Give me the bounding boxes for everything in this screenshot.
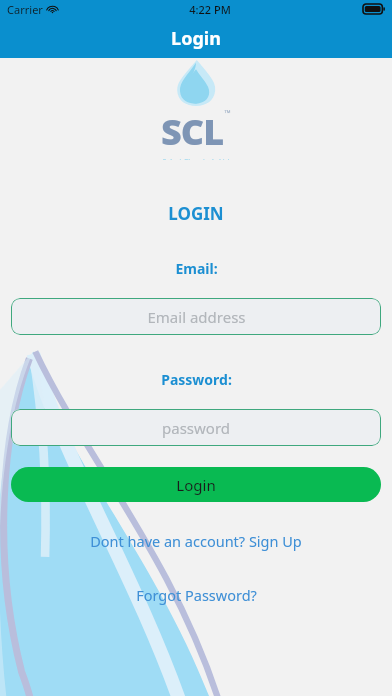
staticText: Login bbox=[171, 26, 221, 51]
button[interactable]: password bbox=[11, 409, 381, 446]
staticText: Carrier bbox=[7, 2, 43, 17]
staticText: LOGIN bbox=[168, 202, 224, 225]
button[interactable]: Forgot Password? bbox=[0, 581, 392, 609]
staticText: password bbox=[162, 418, 230, 438]
staticText: Login bbox=[176, 475, 216, 495]
staticText: SCL bbox=[161, 107, 224, 156]
staticText: Forgot Password? bbox=[136, 585, 257, 605]
button[interactable]: Login bbox=[11, 467, 381, 502]
staticText: Password: bbox=[161, 370, 232, 389]
button[interactable]: Dont have an account? Sign Up bbox=[0, 527, 392, 555]
button[interactable]: Email address bbox=[11, 298, 381, 335]
staticText: Select Chemicals Ltd bbox=[162, 157, 230, 160]
staticText: ™ bbox=[224, 107, 231, 118]
staticText: Email address bbox=[147, 307, 246, 327]
staticText: Email: bbox=[175, 259, 218, 278]
staticText: Dont have an account? Sign Up bbox=[90, 531, 302, 551]
staticText: 4:22 PM bbox=[189, 2, 231, 17]
